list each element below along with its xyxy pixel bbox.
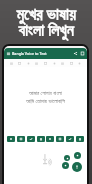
button[interactable]: Tool 5: [56, 136, 64, 142]
button[interactable]: Format 2: [26, 61, 31, 66]
button[interactable]: Microphone: [72, 162, 82, 172]
button[interactable]: Format 7: [69, 61, 74, 66]
button[interactable]: Share: [73, 51, 78, 56]
button[interactable]: Copy: [64, 155, 70, 161]
button[interactable]: Tool 3: [37, 136, 45, 142]
button[interactable]: Tool 1: [17, 136, 25, 142]
staticText: আমি তোমায় ভালোবাসি: [26, 97, 66, 104]
staticText: মুখের ভাষায়: [16, 3, 76, 25]
button[interactable]: Format 6: [60, 61, 65, 66]
staticText: আমার সোনার বাংলা: [29, 89, 62, 96]
button[interactable]: Format 0: [9, 61, 14, 66]
button[interactable]: Format 5: [52, 61, 57, 66]
button[interactable]: Format 3: [34, 61, 39, 66]
button[interactable]: Tool 6: [66, 136, 74, 142]
staticText: Bangla Voice to Text: [12, 51, 47, 56]
button[interactable]: Tool 0: [7, 136, 15, 142]
button[interactable]: Clear: [74, 152, 81, 159]
button[interactable]: Tool 2: [27, 136, 35, 142]
button[interactable]: Settings: [62, 162, 69, 169]
button[interactable]: Format 1: [17, 61, 22, 66]
button[interactable]: Format 4: [43, 61, 48, 66]
button[interactable]: Tool 7: [76, 136, 84, 142]
staticText: বাংলা লিখুন: [18, 19, 74, 41]
button[interactable]: Menu: [6, 51, 11, 56]
button[interactable]: Format 8: [77, 61, 82, 66]
button[interactable]: Save: [80, 51, 85, 56]
button[interactable]: Tool 4: [46, 136, 54, 142]
